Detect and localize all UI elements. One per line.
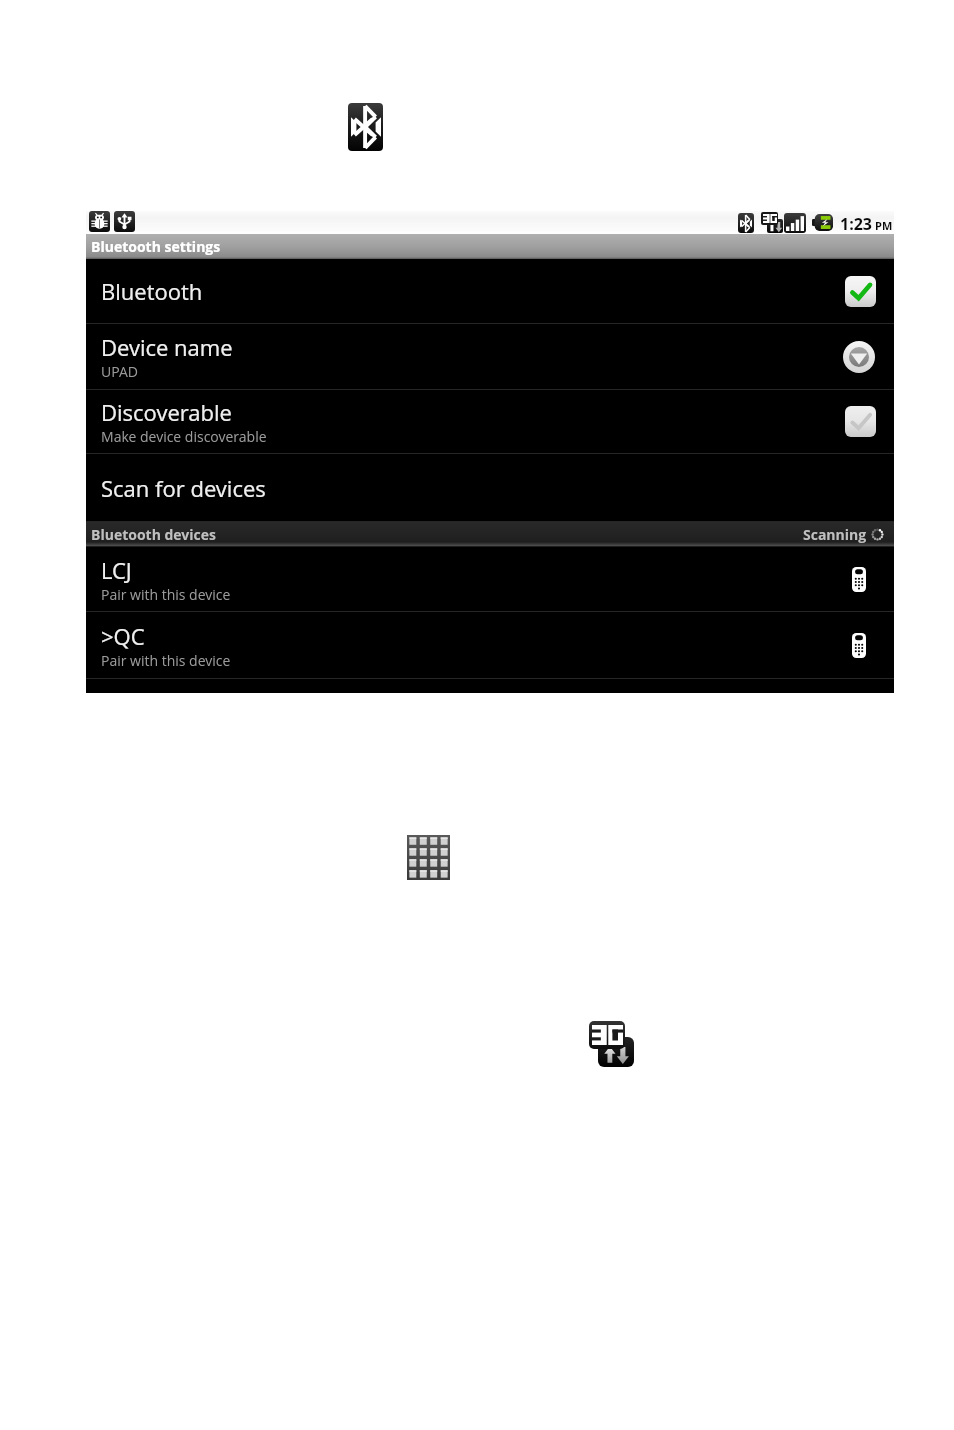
button[interactable]: Discoverable off <box>845 406 876 437</box>
button[interactable]: Change device name <box>843 341 875 373</box>
button[interactable]: Phone device <box>852 567 866 592</box>
button[interactable]: Bluetooth on <box>845 276 876 307</box>
button[interactable]: All apps <box>407 835 450 880</box>
staticText: Make device discoverable <box>101 427 267 446</box>
button[interactable]: Bluetooth <box>86 259 894 323</box>
staticText: UPAD <box>101 362 138 381</box>
staticText: Bluetooth devices <box>91 525 216 544</box>
staticText: Scan for devices <box>101 473 266 503</box>
button[interactable]: Bluetooth devices <box>86 522 894 547</box>
button[interactable]: 3G data <box>589 1021 634 1067</box>
staticText: Scanning <box>803 525 867 544</box>
staticText: Discoverable <box>101 397 232 427</box>
button[interactable]: Bluetooth <box>348 103 383 151</box>
button[interactable]: Scan for devices <box>86 454 894 521</box>
staticText: LCJ <box>101 555 132 585</box>
staticText: 1:23 <box>840 213 872 235</box>
button[interactable]: Discoverable <box>86 390 894 453</box>
staticText: Bluetooth settings <box>91 237 221 256</box>
staticText: >QC <box>101 621 145 651</box>
staticText: Pair with this device <box>101 585 231 604</box>
button[interactable]: Device name <box>86 324 894 389</box>
button[interactable]: >QC <box>86 612 894 678</box>
staticText: PM <box>875 218 893 233</box>
staticText: Device name <box>101 332 233 362</box>
button[interactable]: LCJ <box>86 547 894 611</box>
button[interactable]: Phone device <box>852 633 866 658</box>
staticText: Bluetooth <box>101 276 203 306</box>
staticText: Pair with this device <box>101 651 231 670</box>
